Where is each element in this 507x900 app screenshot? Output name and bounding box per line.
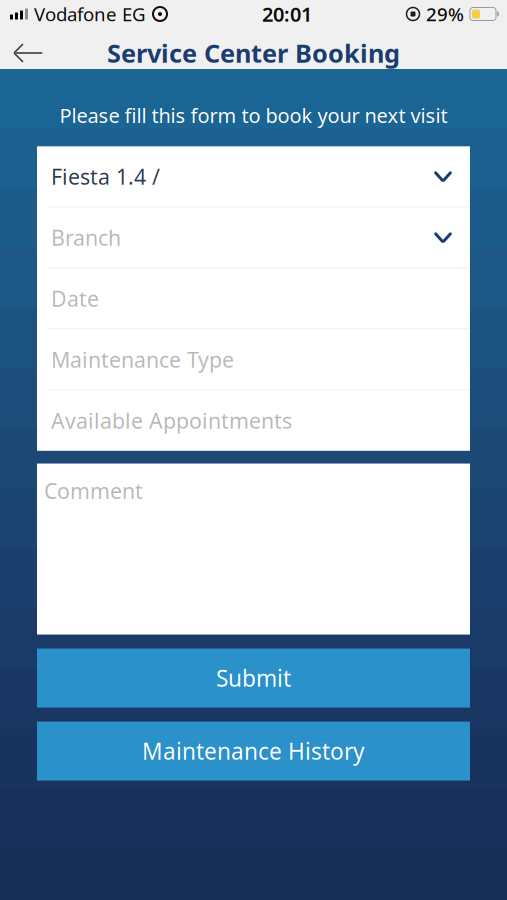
- staticText: Service Center Booking: [107, 36, 400, 70]
- staticText: Maintenance History: [142, 736, 365, 766]
- button[interactable]: Submit: [37, 649, 470, 708]
- staticText: Please fill this form to book your next …: [59, 102, 447, 129]
- staticText: Comment: [44, 477, 143, 505]
- button[interactable]: Comment: [37, 464, 470, 635]
- staticText: Date: [51, 284, 99, 313]
- button[interactable]: Branch: [37, 208, 470, 268]
- staticText: 20:01: [262, 1, 312, 27]
- staticText: Submit: [216, 663, 291, 693]
- staticText: Vodafone EG: [34, 2, 146, 26]
- button[interactable]: Available Appointments: [37, 391, 470, 451]
- staticText: Maintenance Type: [51, 345, 234, 374]
- button[interactable]: Maintenance Type: [37, 330, 470, 390]
- staticText: 29%: [426, 2, 464, 26]
- button[interactable]: Back: [0, 28, 54, 78]
- staticText: Available Appointments: [51, 406, 292, 435]
- staticText: Fiesta 1.4 /: [51, 162, 160, 191]
- button[interactable]: Date: [37, 269, 470, 329]
- staticText: Branch: [51, 223, 121, 252]
- button[interactable]: Fiesta 1.4 /: [37, 147, 470, 207]
- button[interactable]: Maintenance History: [37, 722, 470, 781]
